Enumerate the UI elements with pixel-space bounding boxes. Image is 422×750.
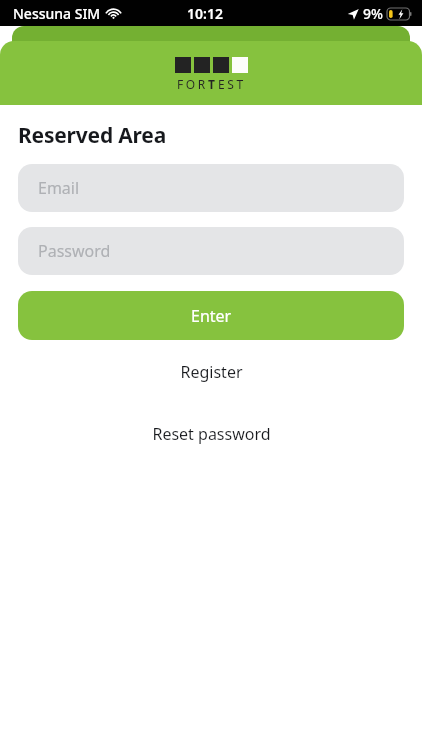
- button[interactable]: Enter: [18, 291, 404, 340]
- staticText: Register: [180, 361, 243, 383]
- staticText: 9%: [363, 4, 383, 23]
- button[interactable]: Email: [18, 164, 404, 212]
- button[interactable]: Register: [0, 359, 422, 385]
- staticText: Reserved Area: [18, 121, 167, 150]
- staticText: Nessuna SIM: [13, 4, 101, 23]
- staticText: EST: [218, 76, 246, 92]
- staticText: T: [208, 76, 218, 92]
- staticText: Reset password: [152, 423, 271, 445]
- staticText: 10:12: [187, 4, 223, 23]
- staticText: Password: [38, 240, 111, 262]
- button[interactable]: Password: [18, 227, 404, 275]
- staticText: FOR: [177, 76, 208, 92]
- staticText: Enter: [191, 305, 232, 327]
- button[interactable]: Reset password: [0, 421, 422, 447]
- staticText: Email: [38, 177, 80, 199]
